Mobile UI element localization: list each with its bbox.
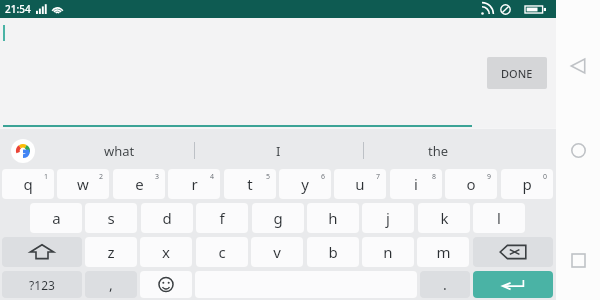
button[interactable]: Emoji — [140, 271, 192, 298]
staticText: what — [104, 142, 135, 160]
button[interactable]: DONE — [487, 57, 547, 89]
button[interactable]: j — [362, 203, 414, 233]
button[interactable]: x — [140, 237, 192, 267]
staticText: n — [383, 242, 393, 262]
staticText: e — [135, 174, 144, 194]
button[interactable]: Enter — [473, 271, 553, 298]
staticText: c — [218, 242, 226, 262]
staticText: k — [440, 208, 449, 228]
staticText: w — [77, 174, 89, 194]
staticText: 0 — [543, 172, 548, 182]
staticText: m — [436, 242, 451, 262]
button[interactable] — [0, 18, 556, 128]
staticText: 9 — [487, 172, 492, 182]
staticText: 6 — [321, 172, 326, 182]
button[interactable]: b — [307, 237, 359, 267]
button[interactable]: k — [418, 203, 470, 233]
button[interactable]: q — [2, 169, 54, 199]
staticText: . — [443, 275, 447, 294]
staticText: 2 — [99, 172, 104, 182]
staticText: 21:54 — [5, 2, 31, 16]
staticText: i — [414, 174, 418, 194]
staticText: x — [162, 242, 170, 262]
button[interactable]: Shift — [2, 237, 82, 267]
button[interactable]: Back — [560, 44, 596, 88]
button[interactable]: f — [196, 203, 248, 233]
button[interactable]: what — [69, 132, 169, 170]
staticText: I — [276, 142, 281, 160]
button[interactable]: Home — [560, 128, 596, 172]
button[interactable]: c — [196, 237, 248, 267]
staticText: g — [273, 208, 283, 228]
button[interactable]: m — [417, 237, 469, 267]
staticText: the — [428, 142, 449, 160]
button[interactable]: o — [445, 169, 497, 199]
button[interactable]: Google — [11, 139, 35, 163]
button[interactable]: w — [57, 169, 109, 199]
button[interactable]: , — [85, 271, 137, 298]
staticText: d — [162, 208, 172, 228]
staticText: 1 — [44, 172, 49, 182]
button[interactable]: v — [251, 237, 303, 267]
staticText: l — [497, 208, 501, 228]
button[interactable]: t — [224, 169, 276, 199]
button[interactable]: a — [30, 203, 82, 233]
staticText: s — [107, 208, 115, 228]
staticText: 7 — [376, 172, 381, 182]
button[interactable]: Recent apps — [560, 238, 596, 282]
button[interactable]: r — [168, 169, 220, 199]
button[interactable]: Backspace — [473, 237, 553, 267]
staticText: 5 — [266, 172, 271, 182]
button[interactable]: d — [141, 203, 193, 233]
staticText: y — [301, 174, 309, 194]
staticText: , — [109, 275, 113, 294]
staticText: 3 — [155, 172, 160, 182]
staticText: ?123 — [29, 277, 55, 293]
button[interactable]: u — [334, 169, 386, 199]
staticText: b — [328, 242, 338, 262]
staticText: f — [219, 208, 225, 228]
button[interactable]: . — [420, 271, 470, 298]
button[interactable]: e — [113, 169, 165, 199]
button[interactable]: ?123 — [2, 271, 82, 298]
button[interactable]: i — [390, 169, 442, 199]
button[interactable]: y — [279, 169, 331, 199]
staticText: DONE — [501, 66, 533, 81]
button[interactable]: z — [85, 237, 137, 267]
staticText: q — [23, 174, 33, 194]
staticText: v — [273, 242, 281, 262]
button[interactable]: n — [362, 237, 414, 267]
staticText: o — [466, 174, 476, 194]
staticText: j — [386, 208, 390, 228]
staticText: z — [107, 242, 115, 262]
staticText: a — [52, 208, 61, 228]
button[interactable]: I — [228, 132, 328, 170]
staticText: t — [247, 174, 253, 194]
button[interactable]: s — [85, 203, 137, 233]
button[interactable]: p — [501, 169, 553, 199]
staticText: r — [191, 174, 198, 194]
button[interactable]: the — [388, 132, 488, 170]
staticText: u — [355, 174, 365, 194]
button[interactable]: g — [252, 203, 304, 233]
staticText: p — [522, 174, 532, 194]
button[interactable]: h — [307, 203, 359, 233]
staticText: h — [328, 208, 338, 228]
button[interactable]: l — [473, 203, 525, 233]
staticText: 8 — [432, 172, 437, 182]
staticText: 4 — [210, 172, 215, 182]
